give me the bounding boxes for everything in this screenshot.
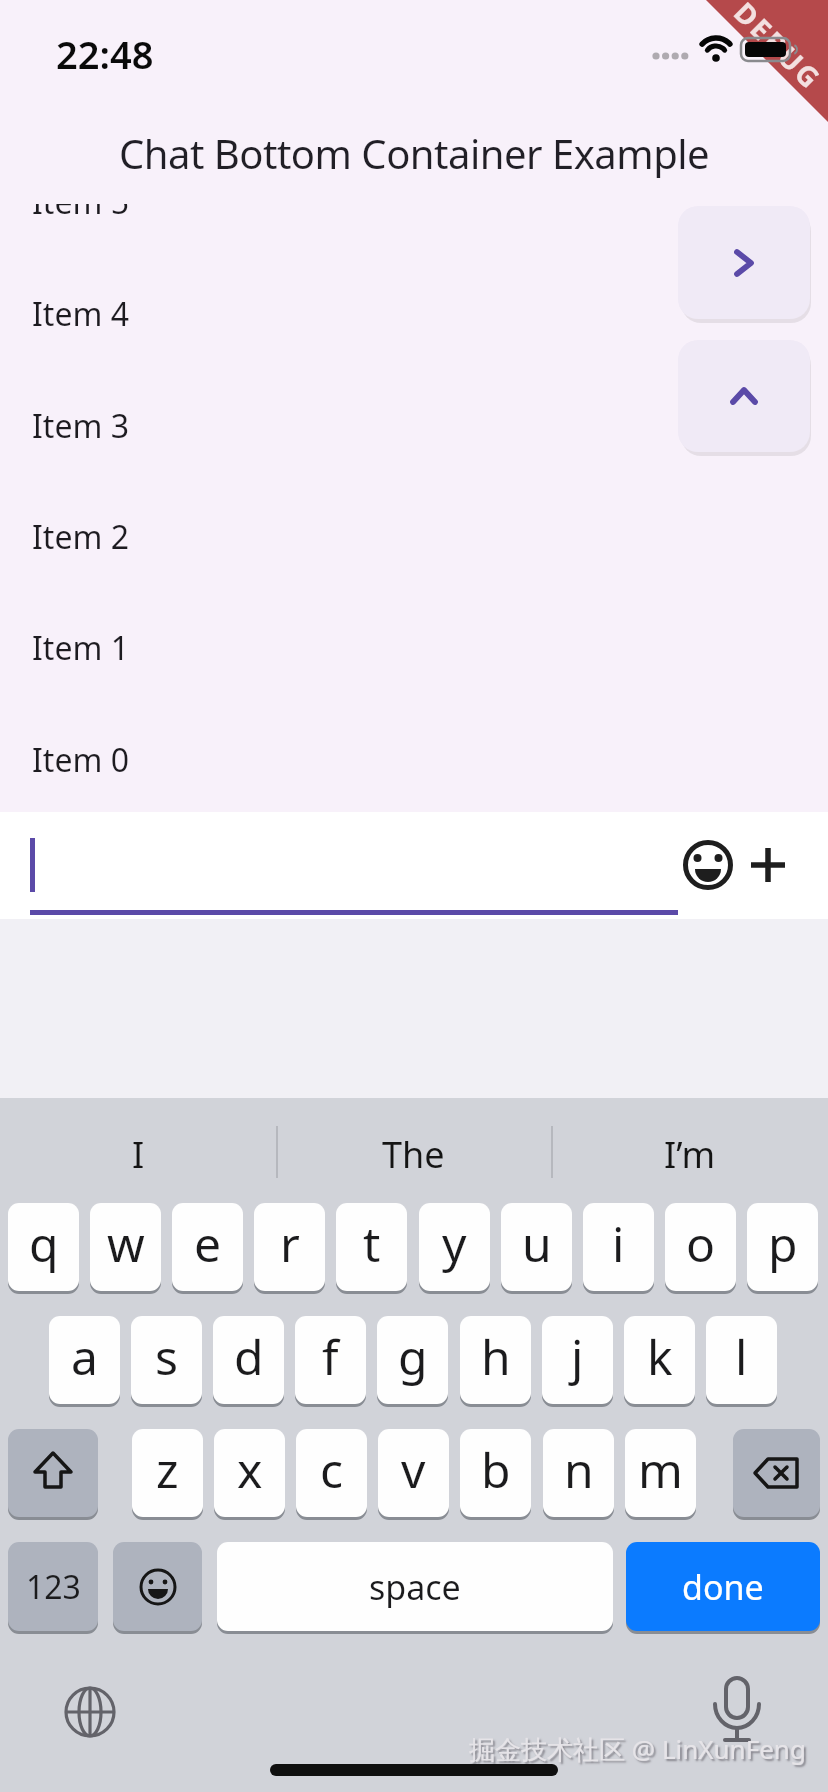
staticText: p <box>768 1211 798 1276</box>
staticText: k <box>647 1324 673 1389</box>
staticText: s <box>155 1324 178 1389</box>
button[interactable]: u <box>501 1203 572 1291</box>
button[interactable] <box>678 340 810 452</box>
staticText: space <box>369 1564 461 1610</box>
button[interactable]: Item 2 <box>0 481 828 593</box>
staticText: r <box>280 1211 300 1276</box>
button[interactable]: done <box>626 1542 820 1631</box>
button[interactable]: x <box>214 1429 285 1517</box>
staticText: Item 2 <box>32 515 129 559</box>
staticText: w <box>107 1211 145 1276</box>
staticText: l <box>735 1324 748 1389</box>
button[interactable]: Item 0 <box>0 704 828 816</box>
staticText: Chat Bottom Container Example <box>119 126 710 178</box>
staticText: x <box>237 1437 263 1502</box>
button[interactable]: p <box>747 1203 818 1291</box>
button[interactable] <box>707 1672 767 1748</box>
button[interactable]: space <box>217 1542 613 1631</box>
staticText: DEBUG <box>726 0 828 97</box>
button[interactable]: o <box>665 1203 736 1291</box>
staticText: u <box>522 1211 552 1276</box>
button[interactable]: w <box>90 1203 161 1291</box>
button[interactable]: 123 <box>8 1542 98 1631</box>
staticText: m <box>638 1437 683 1502</box>
staticText: 123 <box>26 1565 81 1609</box>
staticText: o <box>686 1211 716 1276</box>
staticText: done <box>682 1564 764 1610</box>
staticText: f <box>322 1324 339 1389</box>
staticText: Item 3 <box>32 404 129 448</box>
button[interactable]: r <box>254 1203 325 1291</box>
button[interactable] <box>24 824 678 916</box>
button[interactable]: b <box>460 1429 531 1517</box>
staticText: The <box>382 1130 445 1179</box>
button[interactable]: e <box>172 1203 243 1291</box>
button[interactable]: f <box>295 1316 366 1404</box>
button[interactable]: z <box>132 1429 203 1517</box>
staticText: Item 5 <box>32 180 129 224</box>
staticText: e <box>194 1211 222 1276</box>
button[interactable] <box>678 206 810 319</box>
button[interactable]: q <box>8 1203 79 1291</box>
button[interactable]: i <box>583 1203 654 1291</box>
staticText: g <box>398 1324 428 1389</box>
staticText: 掘金技术社区 @ LinXunFeng <box>469 1731 806 1767</box>
button[interactable]: h <box>460 1316 531 1404</box>
button[interactable] <box>60 1682 120 1742</box>
button[interactable]: a <box>49 1316 120 1404</box>
button[interactable]: Item 5 <box>0 146 828 258</box>
button[interactable]: k <box>624 1316 695 1404</box>
button[interactable]: v <box>378 1429 449 1517</box>
button[interactable]: I <box>0 1106 276 1202</box>
staticText: q <box>29 1211 59 1276</box>
staticText: n <box>564 1437 594 1502</box>
button[interactable]: j <box>542 1316 613 1404</box>
button[interactable]: t <box>336 1203 407 1291</box>
button[interactable] <box>740 837 796 893</box>
button[interactable]: c <box>296 1429 367 1517</box>
staticText: t <box>363 1211 381 1276</box>
button[interactable]: d <box>213 1316 284 1404</box>
button[interactable]: g <box>377 1316 448 1404</box>
staticText: y <box>442 1211 467 1276</box>
button[interactable] <box>733 1429 820 1517</box>
staticText: j <box>571 1324 584 1389</box>
staticText: 22:48 <box>56 28 154 72</box>
button[interactable]: Item 4 <box>0 258 828 370</box>
staticText: Item 1 <box>32 626 129 670</box>
button[interactable]: The <box>276 1106 551 1202</box>
button[interactable]: Item 3 <box>0 370 828 482</box>
button[interactable]: l <box>706 1316 777 1404</box>
staticText: h <box>481 1324 511 1389</box>
staticText: d <box>234 1324 264 1389</box>
button[interactable]: n <box>543 1429 614 1517</box>
staticText: z <box>156 1437 179 1502</box>
button[interactable] <box>680 837 736 893</box>
button[interactable]: y <box>419 1203 490 1291</box>
staticText: b <box>481 1437 511 1502</box>
staticText: c <box>320 1437 344 1502</box>
staticText: I <box>132 1130 145 1179</box>
button[interactable]: m <box>625 1429 696 1517</box>
staticText: i <box>612 1211 625 1276</box>
staticText: a <box>71 1324 98 1389</box>
staticText: v <box>401 1437 426 1502</box>
button[interactable] <box>8 1429 98 1517</box>
button[interactable]: s <box>131 1316 202 1404</box>
button[interactable] <box>113 1542 202 1631</box>
button[interactable]: I’m <box>551 1106 828 1202</box>
staticText: Item 4 <box>32 292 129 336</box>
staticText: I’m <box>664 1130 716 1179</box>
button[interactable]: Item 1 <box>0 592 828 704</box>
staticText: Item 0 <box>32 738 129 782</box>
